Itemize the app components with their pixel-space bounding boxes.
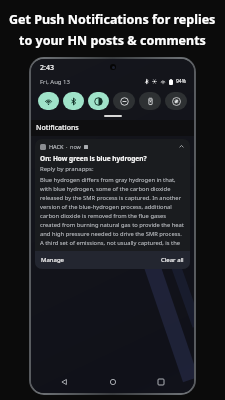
staticText: Get Push Notifications for replies (9, 11, 216, 28)
staticText: Blue hydrogen differs from gray hydrogen… (40, 176, 176, 184)
button[interactable]: Dark theme (88, 92, 109, 110)
staticText: Fri, Aug 13 (40, 78, 70, 86)
staticText: released by the SMR process is captured.… (40, 194, 182, 202)
staticText: to your HN posts & comments (19, 32, 206, 49)
button[interactable]: Collapse (178, 143, 185, 150)
staticText: Clear all (161, 256, 184, 264)
button[interactable]: Recents (154, 375, 168, 389)
staticText: 94% (176, 78, 186, 85)
staticText: Reply by pranapps: (40, 165, 94, 173)
button[interactable]: Wi-Fi (38, 92, 59, 110)
staticText: version of the blue-hydrogen process, ad… (40, 203, 172, 211)
button[interactable]: Back (57, 375, 71, 389)
button[interactable]: Home (106, 375, 120, 389)
staticText: · (66, 143, 68, 150)
staticText: 2:43 (40, 63, 54, 73)
button[interactable]: Do not disturb (113, 92, 135, 110)
button[interactable]: Flashlight (139, 92, 161, 110)
staticText: carbon dioxide is removed from the flue … (40, 212, 167, 220)
staticText: HACK (49, 143, 64, 150)
button[interactable]: HACK (35, 139, 190, 269)
staticText: and high pressure needed to drive the SM… (40, 230, 182, 238)
staticText: On: How green is blue hydrogen? (40, 154, 147, 163)
staticText: created from burning natural gas to prov… (40, 221, 184, 229)
button[interactable]: Bluetooth (63, 92, 84, 110)
button[interactable]: Auto rotate (165, 92, 187, 110)
staticText: with blue hydrogen, some of the carbon d… (40, 185, 171, 193)
staticText: A third set of emissions, not usually ca… (40, 239, 181, 247)
staticText: Notifications (36, 123, 79, 133)
staticText: Manage (41, 256, 64, 264)
button[interactable]: Manage (41, 256, 64, 264)
button[interactable]: Clear all (161, 256, 184, 264)
staticText: now (70, 143, 81, 150)
